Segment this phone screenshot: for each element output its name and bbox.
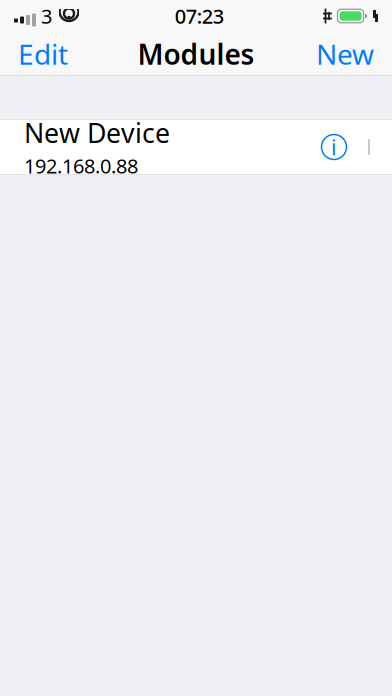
button[interactable]: New [300,27,390,81]
staticText: Modules [137,35,254,73]
staticText: New [316,35,374,73]
button[interactable]: More Info [318,127,350,167]
staticText: 192.168.0.88 [24,152,138,179]
staticText: New Device [24,115,170,150]
staticText: i [331,133,337,161]
staticText: Edit [18,35,68,73]
button[interactable]: Edit [2,27,84,81]
button[interactable]: New Device [0,119,392,175]
staticText: 07:23 [175,3,224,29]
staticText: 3 [41,3,52,29]
